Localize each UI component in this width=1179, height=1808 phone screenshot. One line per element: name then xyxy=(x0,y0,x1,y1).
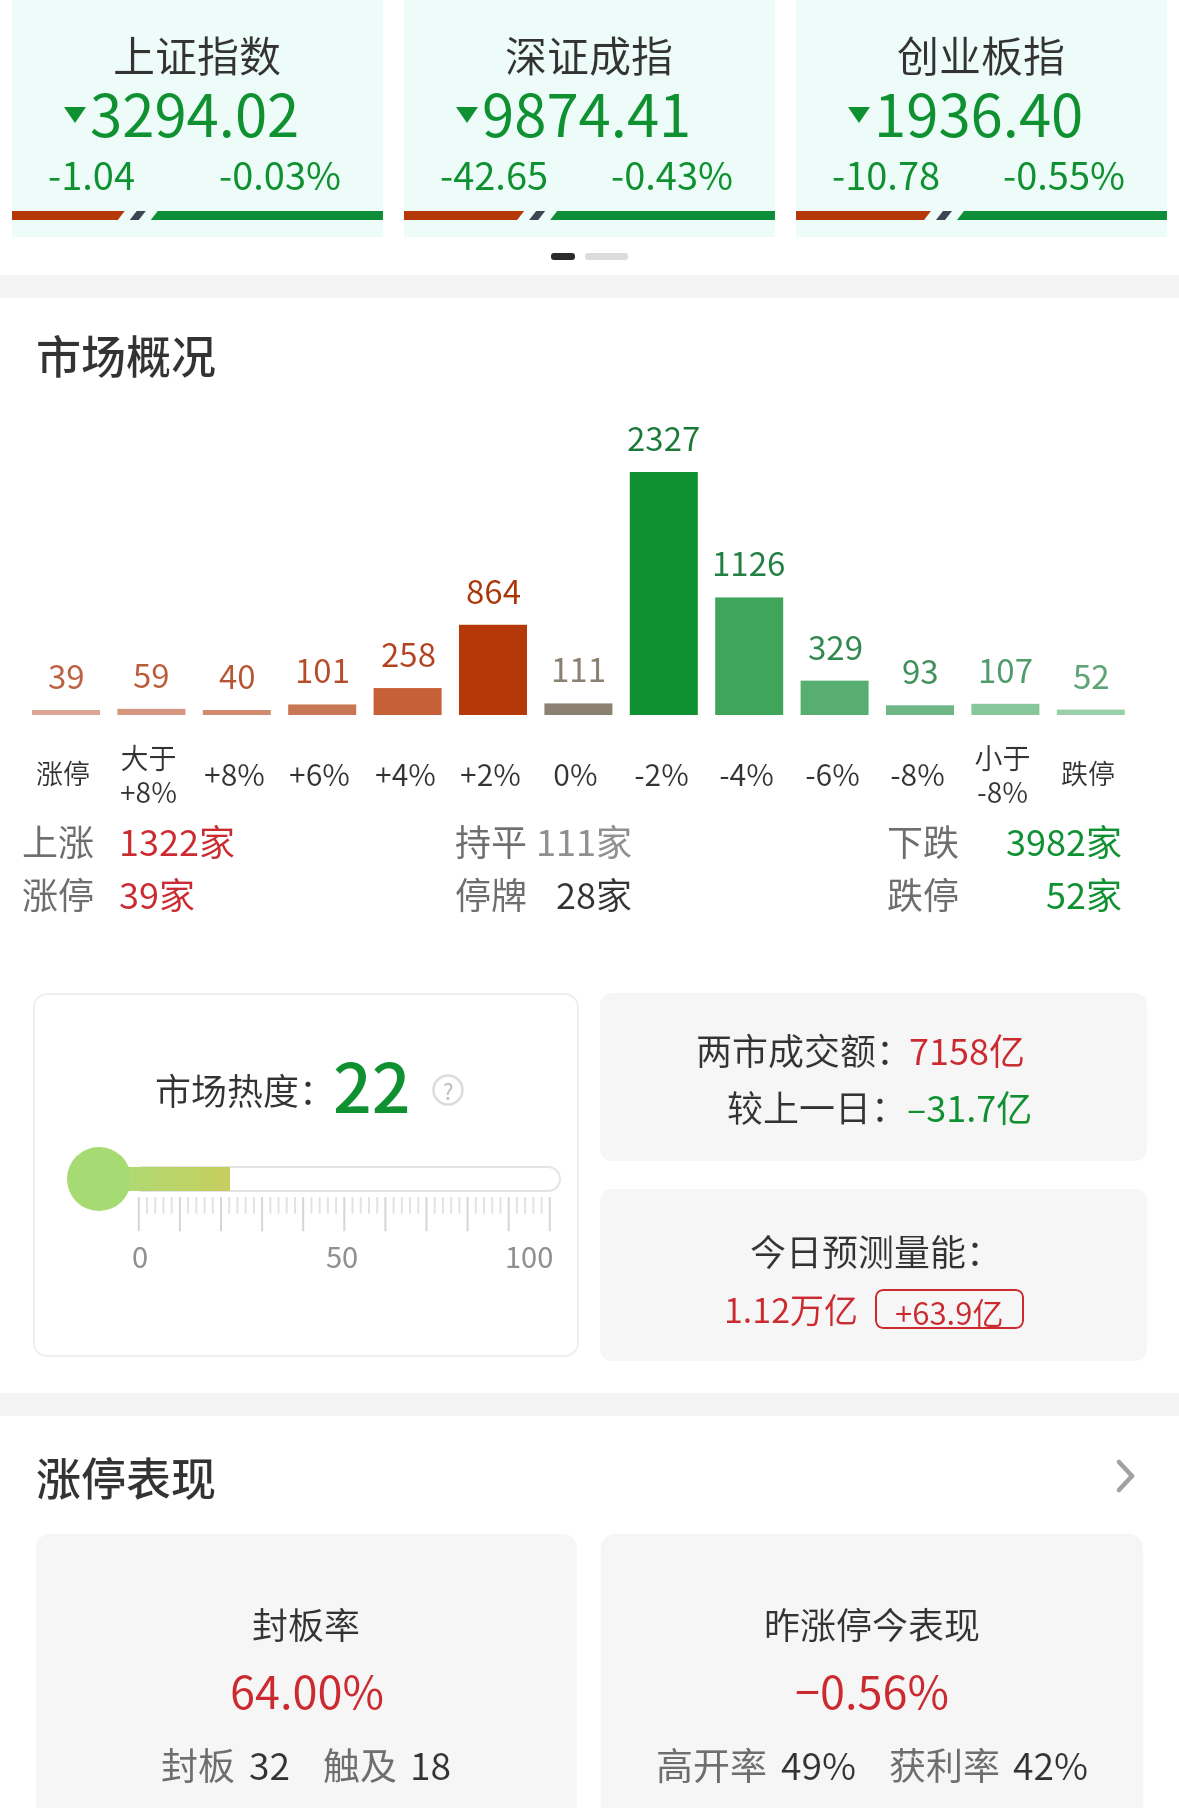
staticText: 59 xyxy=(133,650,170,694)
staticText: 获利率 xyxy=(889,1737,1000,1791)
button[interactable]: 深证成指 xyxy=(404,0,775,237)
button[interactable]: 两市成交额： xyxy=(600,993,1147,1161)
staticText: 9874.41 xyxy=(482,70,692,154)
staticText: 28家 xyxy=(556,867,632,919)
button[interactable]: 上证指数 xyxy=(12,0,383,237)
staticText: 封板 xyxy=(161,1737,235,1791)
staticText: 111家 xyxy=(536,814,632,866)
staticText: −0.56% xyxy=(795,1657,949,1722)
staticText: 市场概况 xyxy=(36,322,217,387)
staticText: 100 xyxy=(505,1234,554,1276)
staticText: 52家 xyxy=(1046,867,1122,919)
staticText: 329 xyxy=(808,622,863,666)
staticText: -42.65 xyxy=(440,146,549,201)
staticText: 上涨 xyxy=(22,814,95,866)
other: 查看更多 xyxy=(1115,1456,1136,1496)
staticText: -0.55% xyxy=(1003,146,1126,201)
staticText: -0.43% xyxy=(611,146,734,201)
staticText: 101 xyxy=(295,645,350,689)
staticText: 32 xyxy=(249,1737,291,1791)
staticText: ? xyxy=(443,1074,454,1106)
staticText: 52 xyxy=(1073,651,1110,695)
staticText: 3982家 xyxy=(1006,814,1122,866)
staticText: 跌停 xyxy=(1061,753,1115,792)
staticText: 40 xyxy=(219,651,256,695)
staticText: 1.12万亿 xyxy=(724,1284,859,1333)
staticText: 2327 xyxy=(627,413,701,457)
staticText: 93 xyxy=(902,646,939,690)
staticText: 高开率 xyxy=(656,1737,767,1791)
staticText: 深证成指 xyxy=(505,23,674,84)
staticText: -6% xyxy=(805,751,860,794)
staticText: 上证指数 xyxy=(113,23,282,84)
button[interactable]: 涨停表现 xyxy=(0,1416,1179,1536)
staticText: +6% xyxy=(289,751,350,794)
staticText: 111 xyxy=(551,644,606,688)
staticText: -2% xyxy=(634,751,689,794)
staticText: 3294.02 xyxy=(90,70,300,154)
staticText: +63.9亿 xyxy=(895,1289,1004,1329)
staticText: -10.78 xyxy=(832,146,941,201)
staticText: 封板率 xyxy=(252,1597,361,1649)
button[interactable]: 昨涨停今表现 xyxy=(601,1534,1143,1808)
staticText: 0% xyxy=(553,751,598,794)
staticText: 两市成交额： xyxy=(696,1023,913,1075)
staticText: -1.04 xyxy=(48,146,136,201)
staticText: 涨停 xyxy=(22,867,95,919)
staticText: 创业板指 xyxy=(897,23,1066,84)
staticText: 1322家 xyxy=(119,814,235,866)
staticText: 39家 xyxy=(119,867,195,919)
staticText: 39 xyxy=(48,651,85,695)
staticText: 864 xyxy=(466,566,521,610)
staticText: +2% xyxy=(460,751,521,794)
staticText: 涨停表现 xyxy=(36,1444,217,1509)
staticText: 昨涨停今表现 xyxy=(764,1597,981,1649)
staticText: -4% xyxy=(719,751,774,794)
staticText: 50 xyxy=(326,1234,359,1276)
staticText: +4% xyxy=(375,751,436,794)
staticText: 107 xyxy=(978,645,1033,689)
staticText: 7158亿 xyxy=(909,1023,1025,1075)
button[interactable]: 创业板指 xyxy=(796,0,1167,237)
staticText: 42% xyxy=(1013,1737,1089,1791)
staticText: 258 xyxy=(381,629,436,673)
staticText: +8% xyxy=(204,751,265,794)
staticText: 停牌 xyxy=(455,867,528,919)
staticText: -8% xyxy=(890,751,945,794)
staticText: 涨停 xyxy=(36,753,90,792)
staticText: 22 xyxy=(333,1034,411,1132)
button[interactable]: 封板率 xyxy=(36,1534,577,1808)
staticText: 市场热度： xyxy=(155,1063,336,1115)
staticText: 大于 +8% xyxy=(120,737,177,807)
button[interactable]: 今日预测量能： xyxy=(600,1189,1147,1361)
staticText: 下跌 xyxy=(887,814,960,866)
staticText: 较上一日： xyxy=(727,1080,908,1132)
staticText: 持平 xyxy=(455,814,528,866)
staticText: 64.00% xyxy=(230,1657,384,1722)
button[interactable]: 市场热度： xyxy=(33,993,579,1357)
staticText: -0.03% xyxy=(219,146,342,201)
staticText: 触及 xyxy=(323,1737,397,1791)
staticText: 今日预测量能： xyxy=(750,1224,1003,1276)
staticText: 49% xyxy=(781,1737,857,1791)
staticText: 1936.40 xyxy=(874,70,1084,154)
staticText: 1126 xyxy=(712,538,786,582)
staticText: 0 xyxy=(132,1234,149,1276)
staticText: 跌停 xyxy=(887,867,960,919)
staticText: 18 xyxy=(410,1737,452,1791)
staticText: –31.7亿 xyxy=(907,1080,1033,1132)
staticText: 小于 -8% xyxy=(974,737,1031,807)
